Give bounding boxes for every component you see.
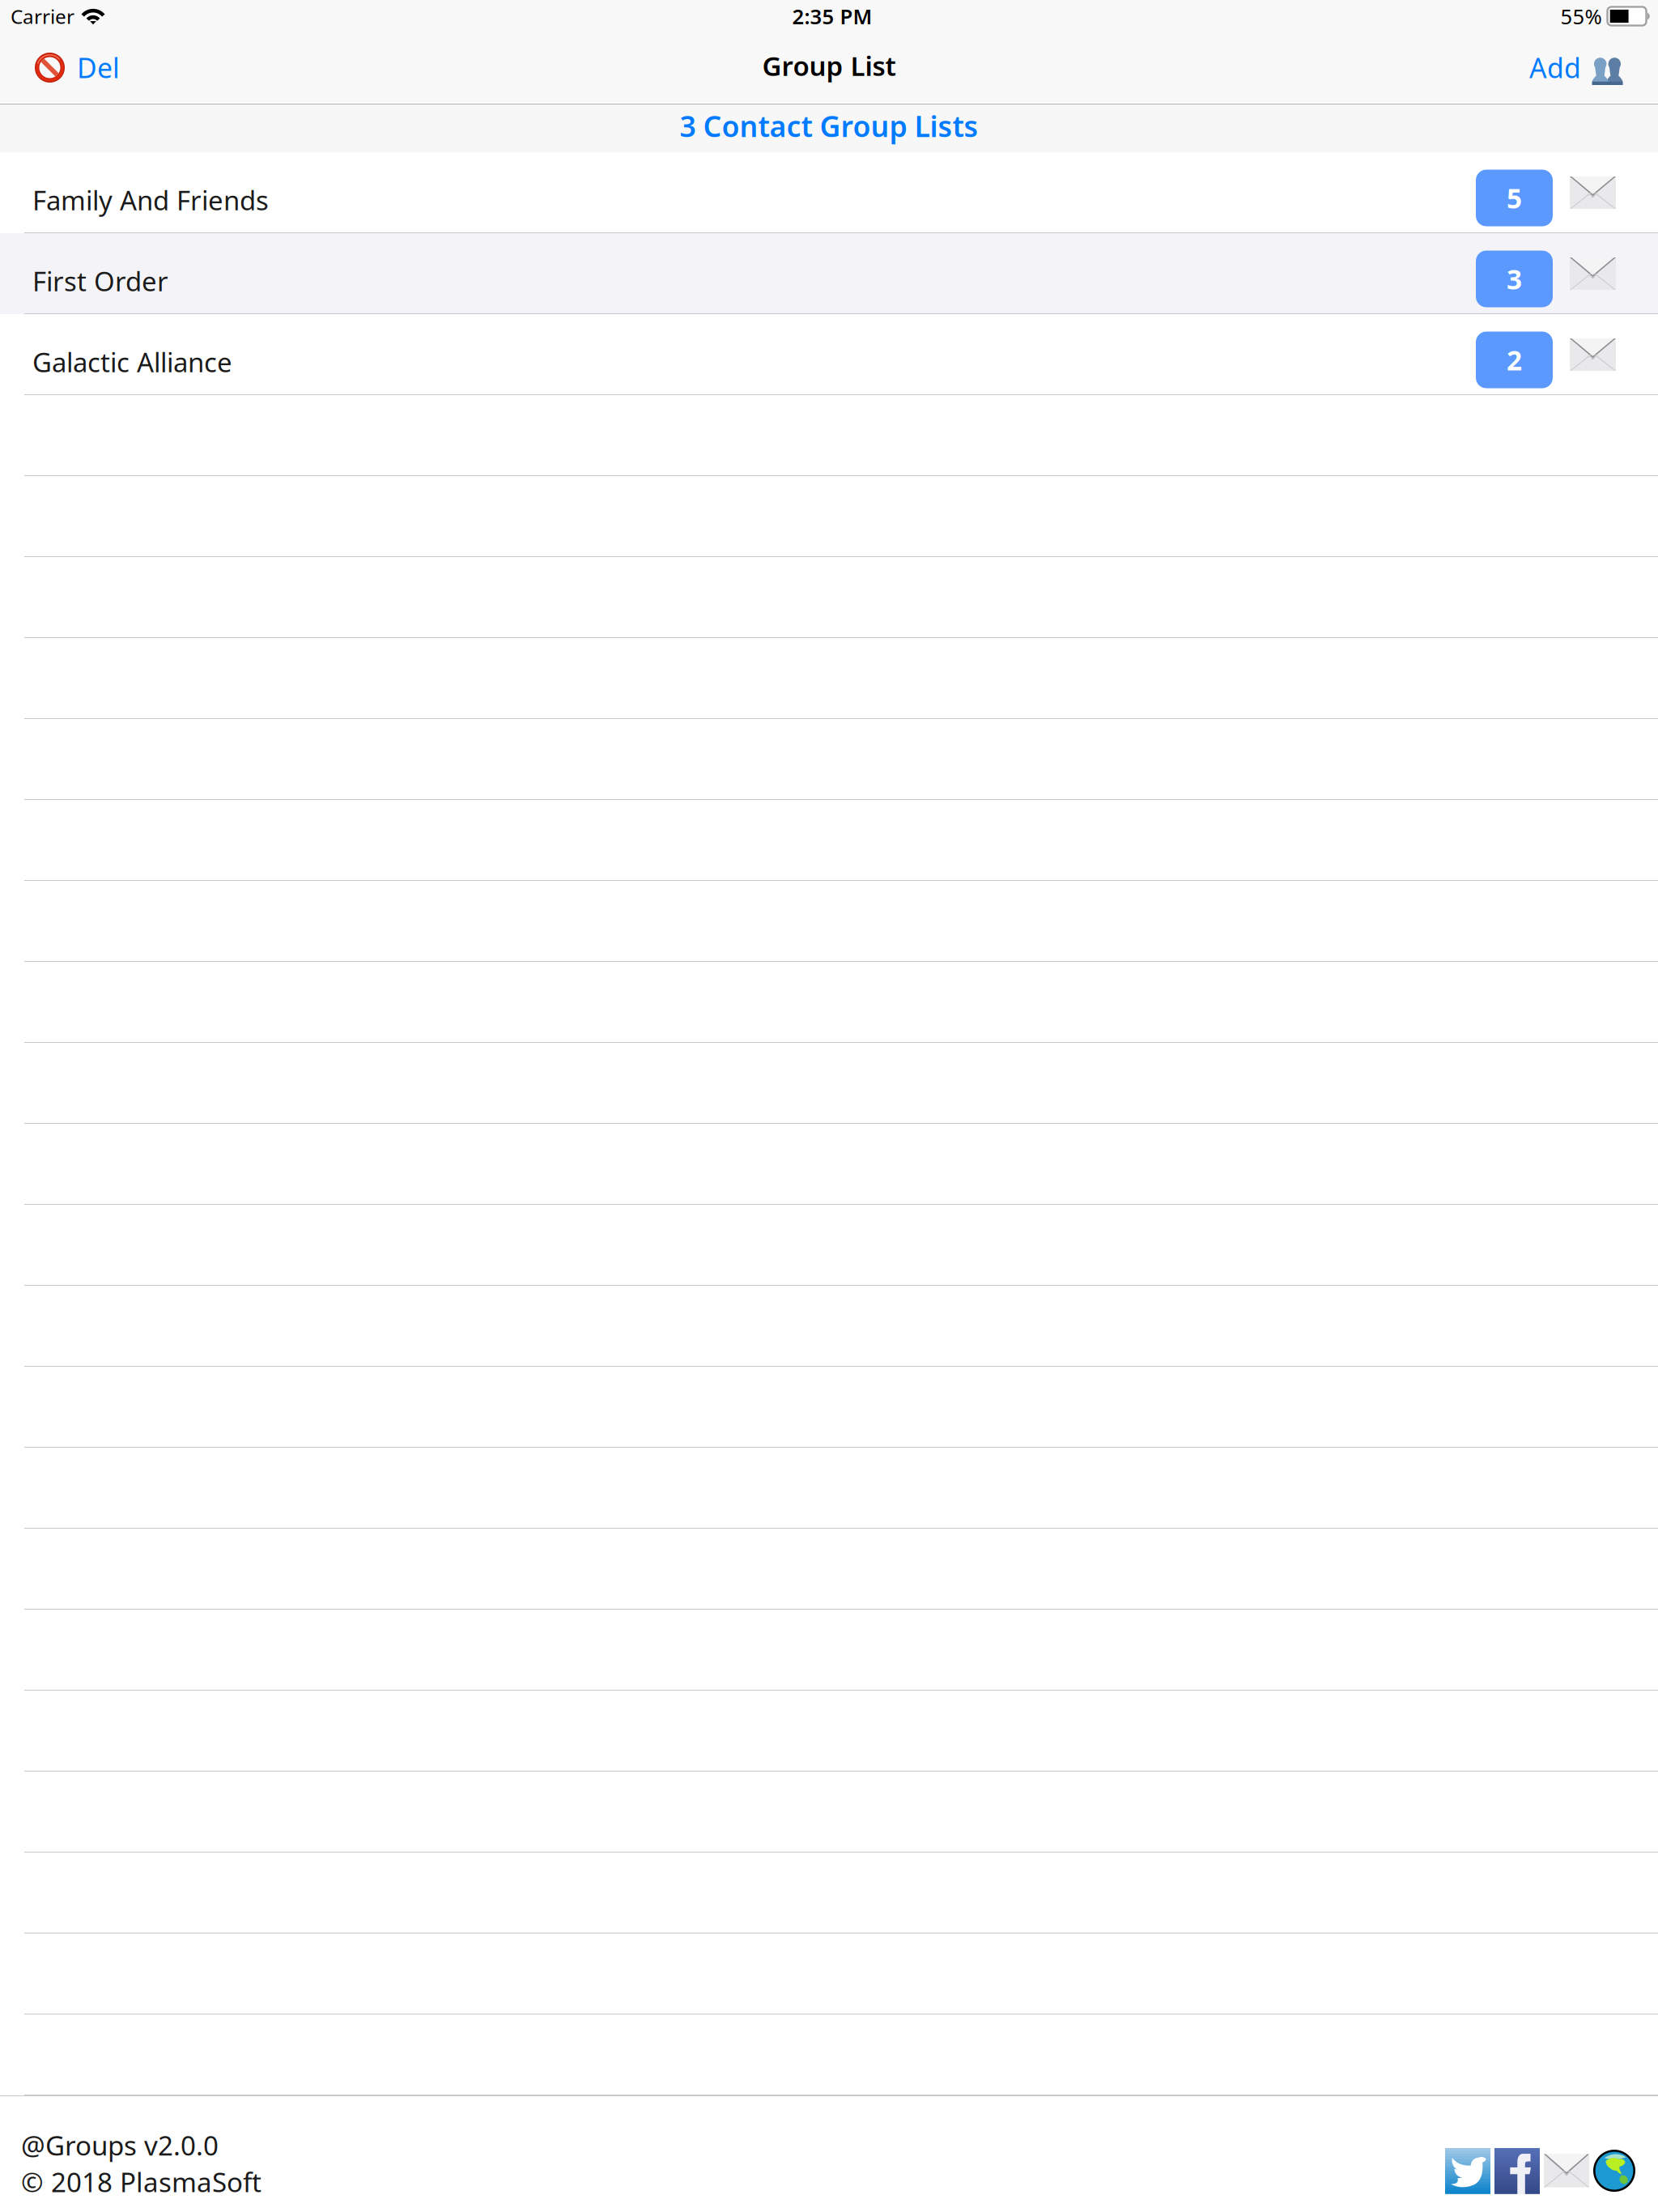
- staticText: 3: [1507, 261, 1522, 297]
- button[interactable]: Facebook: [1494, 2148, 1540, 2193]
- staticText: Family And Friends: [32, 182, 269, 218]
- staticText: 5: [1507, 180, 1522, 216]
- button[interactable]: Galactic Alliance: [0, 314, 1658, 395]
- button[interactable]: Email: [1544, 2154, 1589, 2187]
- staticText: 55%: [1560, 2, 1602, 30]
- staticText: Galactic Alliance: [32, 344, 232, 380]
- button[interactable]: Website: [1593, 2150, 1635, 2192]
- staticText: Del: [77, 49, 120, 86]
- staticText: @Groups v2.0.0: [21, 2127, 219, 2163]
- staticText: Carrier: [11, 3, 74, 30]
- staticText: 2: [1507, 342, 1522, 378]
- button[interactable]: Add: [1510, 32, 1658, 103]
- staticText: © 2018 PlasmaSoft: [21, 2163, 261, 2200]
- button[interactable]: First Order: [0, 233, 1658, 314]
- staticText: First Order: [32, 263, 168, 299]
- button[interactable]: Family And Friends: [0, 152, 1658, 233]
- staticText: Group List: [762, 47, 896, 84]
- staticText: Add: [1529, 49, 1581, 86]
- button[interactable]: Twitter: [1445, 2148, 1490, 2193]
- button[interactable]: Del: [0, 32, 139, 103]
- staticText: 3 Contact Group Lists: [680, 106, 978, 146]
- staticText: 2:35 PM: [792, 2, 872, 30]
